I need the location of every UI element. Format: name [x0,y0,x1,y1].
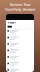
staticText: Reclaim Your [9,3,30,7]
staticText: Third-Party Vendors [4,8,35,11]
staticText: Vendors [7,21,15,24]
